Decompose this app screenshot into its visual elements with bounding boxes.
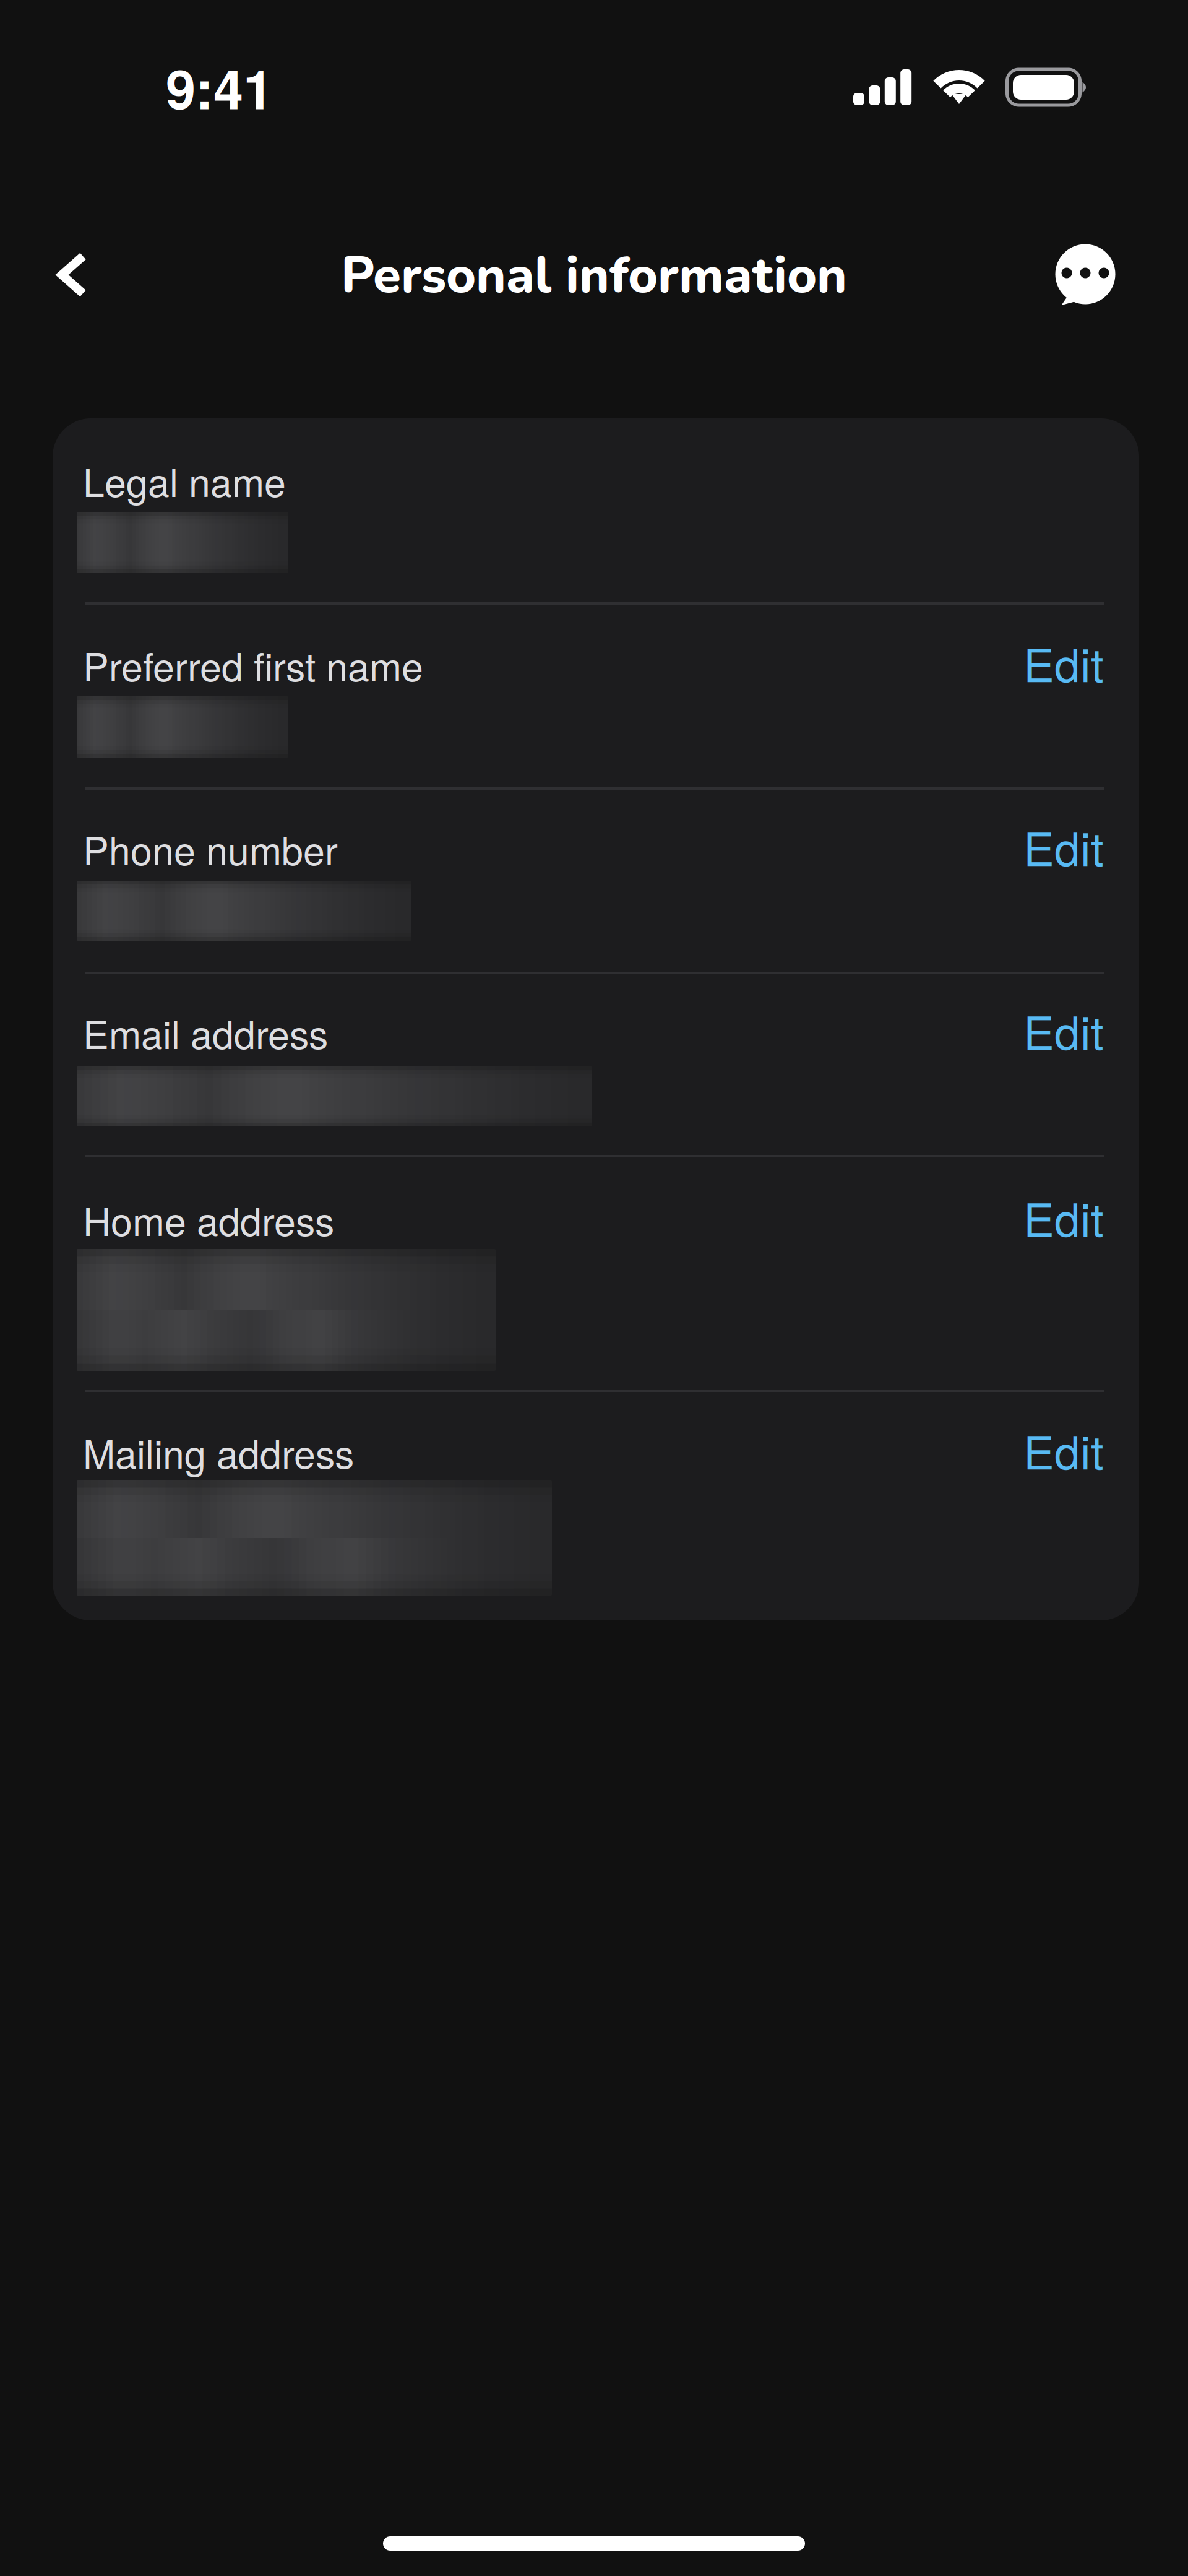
button[interactable]: Preferred first name <box>53 605 1139 787</box>
staticText: 9:41 <box>166 49 273 126</box>
staticText: Edit <box>1023 813 1104 879</box>
button[interactable]: Edit <box>1023 1419 1104 1485</box>
staticText: Home address <box>83 1192 334 1247</box>
staticText: Personal information <box>341 241 847 310</box>
button[interactable]: Edit <box>1023 999 1104 1065</box>
staticText: Mailing address <box>83 1424 354 1480</box>
button[interactable]: Phone number <box>53 790 1139 972</box>
button[interactable]: Home address <box>53 1157 1139 1390</box>
button[interactable]: Email address <box>53 974 1139 1155</box>
staticText: Preferred first name <box>83 637 423 692</box>
staticText: Phone number <box>83 821 338 876</box>
button[interactable]: Legal name <box>53 418 1139 602</box>
staticText: Edit <box>1023 1184 1104 1250</box>
staticText: Edit <box>1023 629 1104 695</box>
button[interactable]: Edit <box>1023 1186 1104 1252</box>
button[interactable]: Mailing address <box>53 1392 1139 1620</box>
button[interactable]: Edit <box>1023 632 1104 698</box>
button[interactable]: Contact support <box>1045 235 1126 315</box>
staticText: Email address <box>83 1005 328 1060</box>
staticText: Edit <box>1023 1416 1104 1483</box>
staticText: Legal name <box>83 453 286 508</box>
button[interactable]: Back <box>32 235 113 315</box>
staticText: Edit <box>1023 997 1104 1063</box>
button[interactable]: Edit <box>1023 815 1104 882</box>
